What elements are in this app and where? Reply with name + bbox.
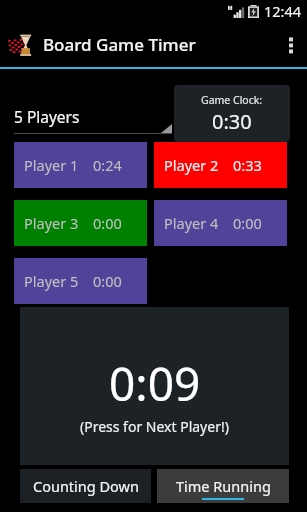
staticText: Time Running [176, 476, 271, 496]
staticText: Counting Down [33, 476, 139, 496]
button[interactable]: Player 2 [154, 142, 287, 188]
staticText: 12:44 [264, 1, 302, 21]
staticText: 0:00 [93, 271, 122, 291]
staticText: Game Clock: [201, 93, 263, 107]
staticText: 0:09 [109, 352, 201, 415]
staticText: Player 4 [164, 213, 219, 233]
button[interactable]: Player 1 [14, 142, 147, 188]
staticText: 0:33 [233, 155, 262, 175]
staticText: 0:24 [93, 155, 122, 175]
staticText: Player 3 [24, 213, 79, 233]
staticText: (Press for Next Player!) [80, 417, 229, 436]
staticText: 0:00 [93, 213, 122, 233]
button[interactable]: 5 Players [14, 99, 172, 134]
staticText: 0:30 [212, 108, 252, 135]
button[interactable]: Player 3 [14, 200, 147, 246]
button[interactable]: Game Clock: [174, 85, 290, 142]
staticText: Player 2 [164, 155, 219, 175]
button[interactable]: Counting Down [20, 469, 151, 503]
button[interactable]: Player 4 [154, 200, 287, 246]
staticText: Player 5 [24, 271, 79, 291]
staticText: 0:00 [233, 213, 262, 233]
staticText: Player 1 [24, 155, 79, 175]
button[interactable]: 0:09 [20, 307, 289, 465]
button[interactable]: Player 5 [14, 258, 147, 304]
staticText: 5 Players [14, 106, 80, 127]
button[interactable]: Time Running [157, 469, 289, 503]
staticText: Board Game Timer [43, 33, 196, 56]
button[interactable]: More options [275, 22, 307, 67]
